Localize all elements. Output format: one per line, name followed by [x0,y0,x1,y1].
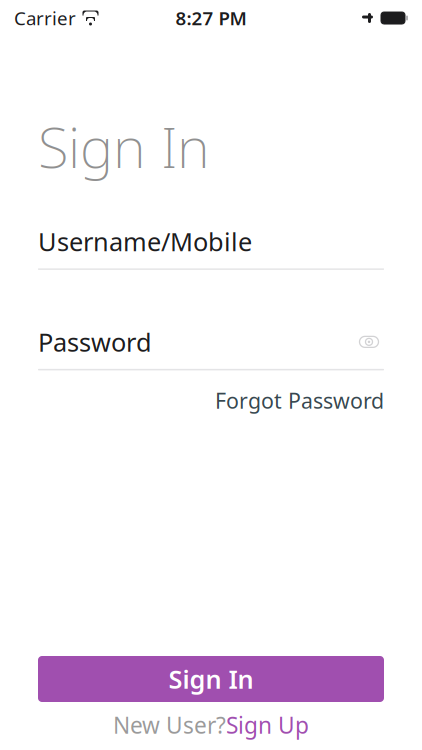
staticText: 8:27 PM [175,6,246,30]
button[interactable]: Forgot Password [215,386,384,415]
staticText: Forgot Password [215,386,384,415]
staticText: Sign In [38,109,210,183]
staticText: Username/Mobile [38,224,252,258]
staticText: Carrier [14,6,76,30]
staticText: Password [38,325,152,359]
staticText: Sign Up [226,710,309,740]
button[interactable]: Sign In [38,656,384,702]
staticText: New User? [113,710,226,740]
button[interactable]: Show password [354,329,384,355]
button[interactable]: New User? [113,708,309,742]
staticText: Sign In [168,662,253,696]
